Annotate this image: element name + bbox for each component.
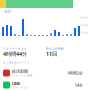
staticText: 4時間44分 — [3, 50, 27, 57]
staticText: 合計 — [4, 9, 12, 14]
staticText: 11回 — [46, 50, 57, 57]
staticText: 2時間 — [80, 23, 88, 27]
button[interactable]: 経済新聞 — [0, 67, 90, 79]
staticText: LINE — [12, 81, 20, 86]
staticText: 0 6 12 18 — [2, 37, 29, 40]
staticText: 持ち上げ回数 — [46, 47, 64, 50]
button[interactable]: LINE — [0, 79, 90, 90]
staticText: 54分 — [75, 82, 83, 88]
staticText: よく使われたアプリ — [3, 61, 30, 64]
staticText: 3時間 — [80, 16, 88, 19]
staticText: スクリーンタイム — [3, 47, 27, 50]
staticText: 経済新聞 — [12, 69, 28, 74]
staticText: 1時間2分 — [67, 70, 83, 76]
staticText: ソーシャル — [12, 86, 27, 89]
staticText: 1時間 — [80, 31, 88, 35]
staticText: ニュースと雑誌 — [12, 74, 33, 77]
